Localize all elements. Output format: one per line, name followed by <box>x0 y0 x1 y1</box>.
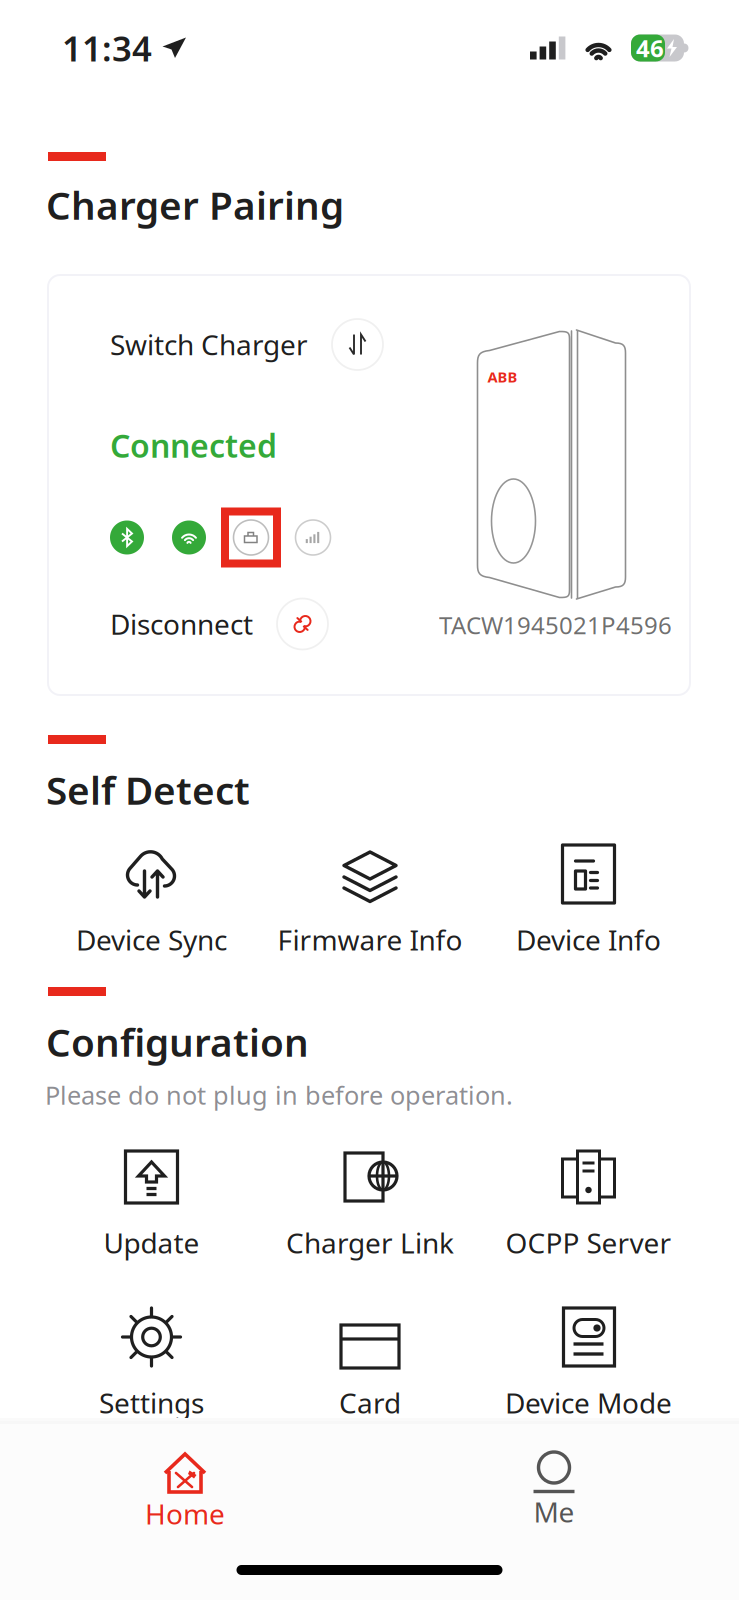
button[interactable]: Wi-Fi <box>158 506 220 568</box>
button[interactable]: Disconnect <box>110 598 328 649</box>
button[interactable]: Update <box>42 1148 261 1261</box>
button[interactable]: Switch Charger <box>110 319 383 370</box>
button[interactable]: Firmware Info <box>261 845 479 958</box>
button[interactable]: Cellular <box>282 506 344 568</box>
staticText: Charger Link <box>286 1224 454 1261</box>
button[interactable]: Ethernet, selected <box>220 506 282 568</box>
button[interactable]: OCPP Server <box>479 1148 698 1261</box>
staticText: Device Sync <box>76 921 227 958</box>
staticText: Charger Pairing <box>46 179 344 230</box>
staticText: Please do not plug in before operation. <box>45 1078 513 1112</box>
staticText: Disconnect <box>110 605 253 643</box>
staticText: Device Info <box>516 921 661 958</box>
button[interactable]: Bluetooth <box>96 506 158 568</box>
button[interactable]: Home <box>0 1449 369 1532</box>
staticText: Self Detect <box>46 764 250 815</box>
staticText: ABB <box>487 367 517 386</box>
button[interactable]: Device Mode <box>479 1308 698 1421</box>
staticText: Connected <box>110 424 277 466</box>
staticText: Firmware Info <box>277 921 462 958</box>
button[interactable]: Device Sync <box>42 845 261 958</box>
staticText: Settings <box>99 1384 204 1421</box>
staticText: Home <box>145 1495 225 1532</box>
button[interactable]: Card <box>261 1308 479 1421</box>
staticText: Device Mode <box>505 1384 672 1421</box>
button[interactable]: Device Info <box>479 845 698 958</box>
staticText: Update <box>103 1224 199 1261</box>
staticText: TACW1945021P4596 <box>439 609 672 641</box>
button[interactable]: Charger Link <box>261 1148 479 1261</box>
button[interactable]: Settings <box>42 1308 261 1421</box>
staticText: 46 <box>636 32 664 64</box>
button[interactable]: Me <box>369 1451 738 1530</box>
staticText: Me <box>533 1493 574 1530</box>
staticText: Switch Charger <box>110 326 308 363</box>
staticText: Configuration <box>46 1016 309 1067</box>
staticText: Card <box>339 1384 401 1421</box>
staticText: OCPP Server <box>505 1224 671 1261</box>
staticText: 11:34 <box>62 25 152 71</box>
